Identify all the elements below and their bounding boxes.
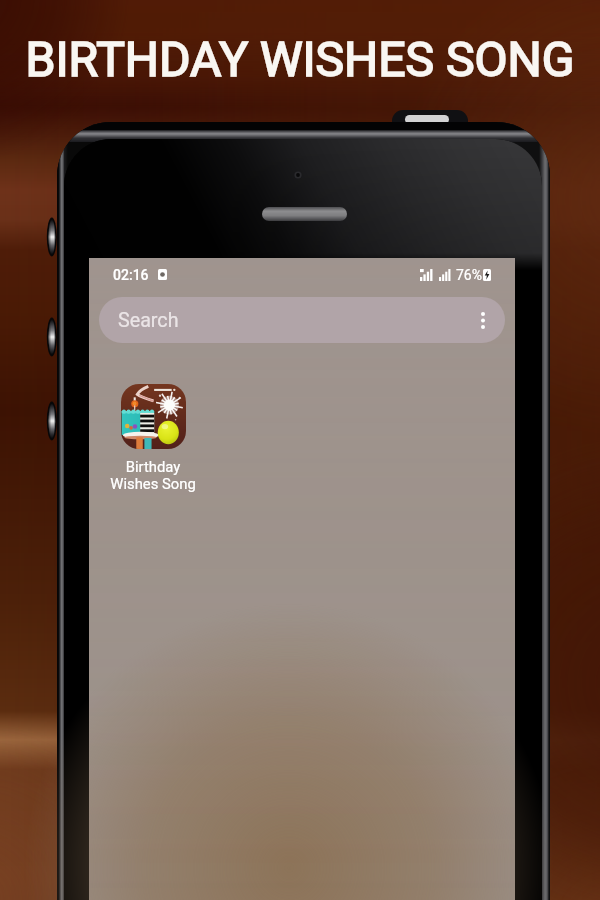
- staticText: 02:16: [113, 267, 149, 283]
- button[interactable]: More options: [470, 307, 496, 333]
- button[interactable]: Search: [99, 297, 505, 343]
- staticText: Birthday Wishes Song: [110, 458, 196, 492]
- staticText: Search: [118, 309, 179, 332]
- staticText: 76%: [456, 267, 482, 283]
- button[interactable]: Birthday Wishes Song: [105, 384, 201, 492]
- staticText: BIRTHDAY WISHES SONG: [0, 31, 600, 87]
